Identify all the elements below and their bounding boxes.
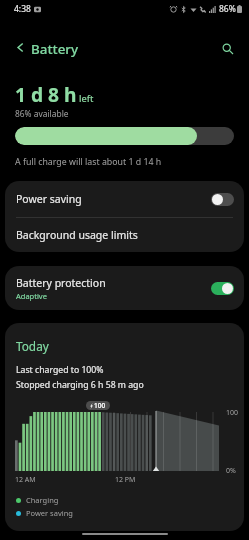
staticText: 100 (226, 408, 239, 418)
staticText: 100 (94, 401, 106, 410)
staticText: 12 AM (15, 475, 36, 485)
staticText: 12 PM (115, 475, 136, 485)
staticText: Battery (31, 40, 79, 58)
staticText: Stopped charging 6 h 58 m ago (16, 379, 144, 391)
button[interactable]: Battery protection (5, 266, 244, 310)
staticText: A full charge will last about 1 d 14 h (15, 156, 162, 168)
button[interactable]: Search (215, 36, 239, 60)
staticText: Charging (26, 495, 59, 505)
staticText: 86% (219, 3, 236, 15)
button[interactable]: Switch on (211, 282, 234, 295)
button[interactable]: Switch off (211, 193, 234, 206)
staticText: 4:38 (14, 3, 31, 15)
staticText: 86% available (15, 108, 69, 119)
staticText: Adaptive (16, 291, 47, 301)
staticText: Last charged to 100% (16, 364, 104, 376)
button[interactable]: Battery (31, 40, 79, 58)
staticText: Power saving (26, 508, 73, 518)
staticText: Battery protection (16, 276, 106, 290)
button[interactable]: Navigate up (8, 35, 32, 59)
button[interactable]: Power saving (5, 181, 244, 217)
staticText: Power saving (16, 192, 82, 206)
staticText: Today (16, 338, 49, 354)
staticText: Background usage limits (16, 228, 138, 242)
staticText: 0% (226, 466, 236, 476)
button[interactable]: Background usage limits (5, 218, 244, 252)
staticText: left (79, 92, 94, 105)
staticText: 1 d 8 h (15, 81, 77, 107)
